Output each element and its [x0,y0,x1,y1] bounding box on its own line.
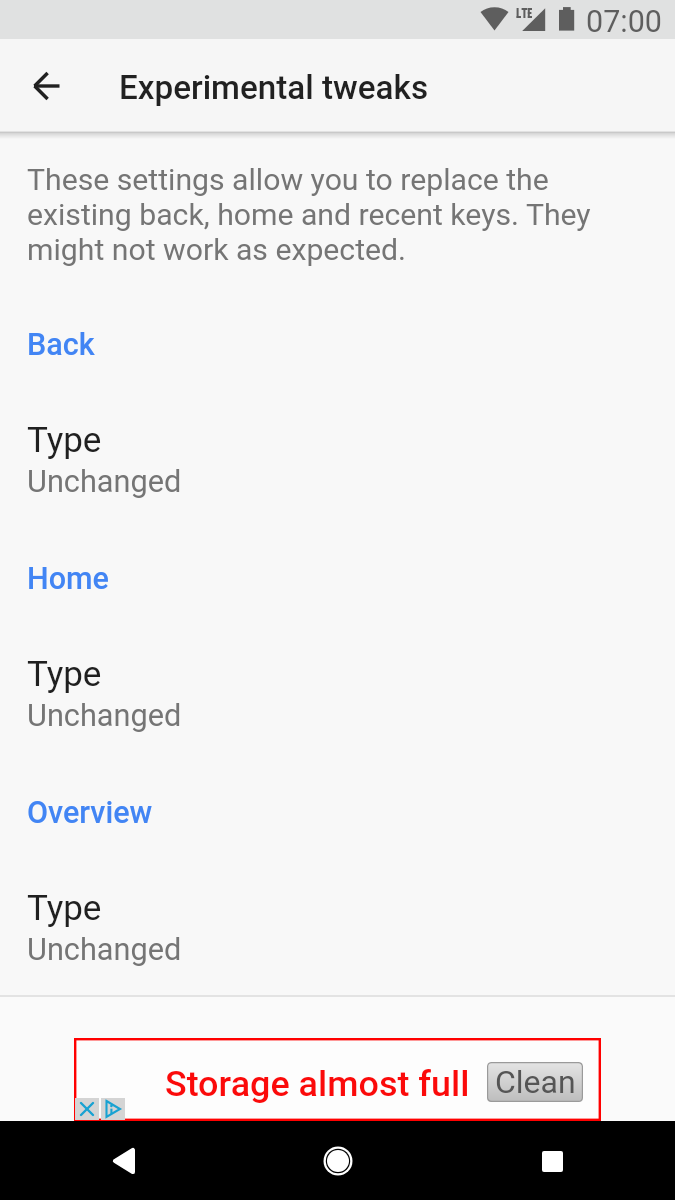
button[interactable]: Back [87,1125,159,1197]
button[interactable]: Storage almost full [74,1038,601,1121]
staticText: Unchanged [27,698,182,734]
button[interactable]: Type [0,386,675,508]
staticText: Unchanged [27,932,182,968]
staticText: Home [27,561,109,597]
button[interactable]: Home [302,1125,374,1197]
staticText: Overview [27,795,153,831]
button[interactable]: Recent apps [516,1125,588,1197]
button[interactable]: Clean [487,1062,583,1102]
staticText: Type [27,420,102,461]
button[interactable]: Close ad [75,1098,99,1120]
staticText: Unchanged [27,464,182,500]
staticText: Type [27,888,102,929]
button[interactable]: Ad choices [101,1098,125,1120]
staticText: 07:00 [586,4,662,40]
staticText: Back [27,327,95,363]
staticText: These settings allow you to replace the … [27,162,591,267]
staticText: Experimental tweaks [119,68,429,107]
button[interactable]: Navigate up [12,52,80,120]
staticText: Clean [495,1063,576,1101]
button[interactable]: Type [0,854,675,976]
staticText: Storage almost full [165,1063,470,1105]
button[interactable]: Type [0,620,675,742]
staticText: Type [27,654,102,695]
